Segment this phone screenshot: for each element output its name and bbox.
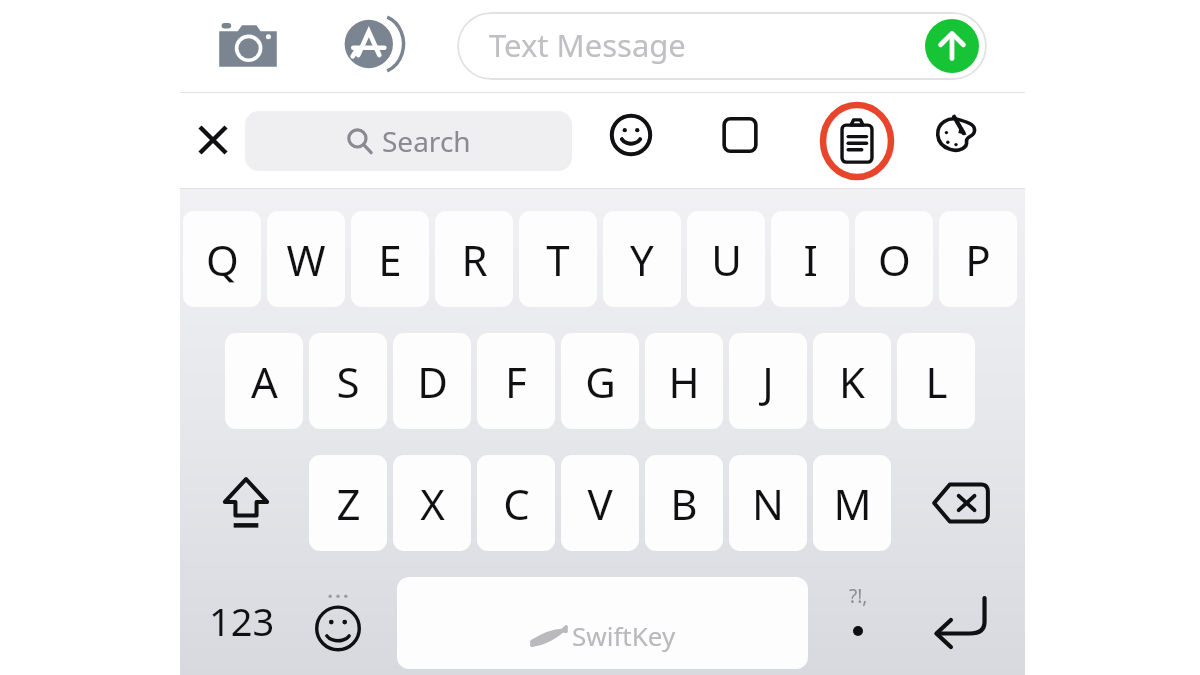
staticText: V: [587, 475, 613, 532]
button[interactable]: M: [813, 455, 891, 551]
staticText: Text Message: [489, 24, 686, 66]
button[interactable]: SwiftKey: [397, 577, 808, 669]
staticText: F: [505, 353, 527, 410]
button[interactable]: Emoji: [603, 107, 659, 163]
staticText: Search: [382, 122, 471, 160]
staticText: D: [417, 353, 448, 410]
button[interactable]: X: [393, 455, 471, 551]
staticText: E: [378, 231, 402, 288]
staticText: S: [336, 353, 360, 410]
button[interactable]: Close: [186, 113, 240, 167]
button[interactable]: J: [729, 333, 807, 429]
button[interactable]: Y: [603, 211, 681, 307]
button[interactable]: D: [393, 333, 471, 429]
staticText: Q: [206, 231, 239, 288]
button[interactable]: Backspace: [915, 455, 1007, 551]
button[interactable]: App Store: [343, 12, 407, 76]
button[interactable]: N: [729, 455, 807, 551]
staticText: I: [803, 231, 818, 288]
button[interactable]: Enter: [915, 575, 1007, 667]
staticText: M: [833, 475, 872, 532]
staticText: P: [965, 231, 991, 288]
button[interactable]: T: [519, 211, 597, 307]
button[interactable]: Send: [925, 19, 979, 73]
button[interactable]: U: [687, 211, 765, 307]
button[interactable]: Text Message: [457, 12, 987, 80]
button[interactable]: Shift: [200, 455, 292, 551]
staticText: Y: [630, 231, 654, 288]
staticText: U: [711, 231, 742, 288]
button[interactable]: W: [267, 211, 345, 307]
button[interactable]: V: [561, 455, 639, 551]
button[interactable]: B: [645, 455, 723, 551]
staticText: SwiftKey: [572, 618, 676, 653]
staticText: X: [420, 475, 445, 532]
staticText: C: [503, 475, 530, 532]
staticText: ?!,: [849, 583, 868, 609]
button[interactable]: O: [855, 211, 933, 307]
button[interactable]: Stickers: [928, 107, 984, 163]
staticText: W: [286, 231, 326, 288]
button[interactable]: S: [309, 333, 387, 429]
staticText: B: [670, 475, 698, 532]
button[interactable]: I: [771, 211, 849, 307]
staticText: T: [546, 231, 570, 288]
button[interactable]: H: [645, 333, 723, 429]
button[interactable]: Clipboard: [819, 103, 895, 179]
button[interactable]: R: [435, 211, 513, 307]
button[interactable]: C: [477, 455, 555, 551]
button[interactable]: GIF: [712, 107, 768, 163]
button[interactable]: Emoji keyboard: [300, 575, 376, 667]
staticText: Z: [336, 475, 361, 532]
button[interactable]: Q: [183, 211, 261, 307]
button[interactable]: Search: [245, 111, 572, 171]
button[interactable]: 123: [190, 575, 294, 667]
staticText: O: [878, 231, 911, 288]
button[interactable]: A: [225, 333, 303, 429]
staticText: R: [461, 231, 488, 288]
staticText: N: [752, 475, 784, 532]
button[interactable]: F: [477, 333, 555, 429]
button[interactable]: Period: [820, 575, 896, 667]
button[interactable]: Camera: [216, 14, 280, 78]
button[interactable]: L: [897, 333, 975, 429]
staticText: L: [925, 353, 948, 410]
staticText: G: [585, 353, 616, 410]
button[interactable]: E: [351, 211, 429, 307]
button[interactable]: Z: [309, 455, 387, 551]
staticText: K: [839, 353, 865, 410]
staticText: 123: [209, 595, 275, 647]
staticText: A: [251, 353, 278, 410]
button[interactable]: K: [813, 333, 891, 429]
button[interactable]: P: [939, 211, 1017, 307]
staticText: J: [762, 353, 774, 410]
staticText: H: [668, 353, 700, 410]
button[interactable]: G: [561, 333, 639, 429]
